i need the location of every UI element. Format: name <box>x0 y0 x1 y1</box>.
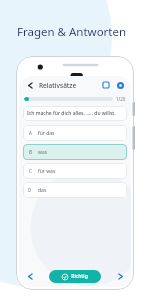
staticText: 1/20 <box>116 96 126 102</box>
button[interactable]: Next <box>114 270 126 282</box>
staticText: Fragen & Antworten <box>17 24 127 40</box>
staticText: für was <box>38 168 56 175</box>
button[interactable]: C <box>23 163 127 179</box>
button[interactable]: B <box>23 144 127 160</box>
button[interactable]: A <box>23 125 127 141</box>
staticText: Richtig <box>71 273 88 280</box>
staticText: was <box>38 149 48 156</box>
staticText: Relativsätze <box>39 81 77 90</box>
button[interactable]: Settings <box>114 79 126 91</box>
button[interactable]: Bookmark <box>100 79 112 91</box>
staticText: Ich mache für dich alles, ..... du wills… <box>27 110 116 117</box>
button[interactable]: D <box>23 182 127 198</box>
button[interactable]: Richtig <box>49 270 101 283</box>
staticText: B <box>29 149 32 155</box>
staticText: D <box>28 187 32 193</box>
button[interactable]: Previous <box>24 270 36 282</box>
button[interactable]: Back <box>24 79 36 91</box>
staticText: für das <box>38 130 55 137</box>
staticText: das <box>38 187 47 194</box>
staticText: A <box>29 130 32 136</box>
staticText: C <box>29 168 32 174</box>
